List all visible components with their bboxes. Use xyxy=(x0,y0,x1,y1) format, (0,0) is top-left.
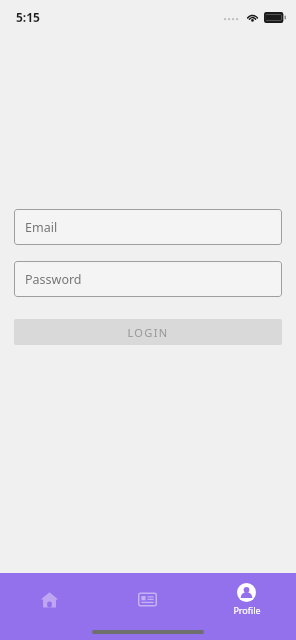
button[interactable]: LOGIN xyxy=(14,319,282,345)
button[interactable]: Feed xyxy=(98,573,197,625)
staticText: Password xyxy=(25,271,82,288)
staticText: LOGIN xyxy=(127,325,169,340)
button[interactable]: Home xyxy=(0,573,98,625)
staticText: Email xyxy=(25,219,58,236)
button[interactable]: Profile xyxy=(197,573,296,625)
button[interactable]: Email xyxy=(14,209,282,245)
staticText: Profile xyxy=(233,604,261,616)
button[interactable]: Password xyxy=(14,261,282,297)
staticText: 5:15 xyxy=(16,9,40,25)
